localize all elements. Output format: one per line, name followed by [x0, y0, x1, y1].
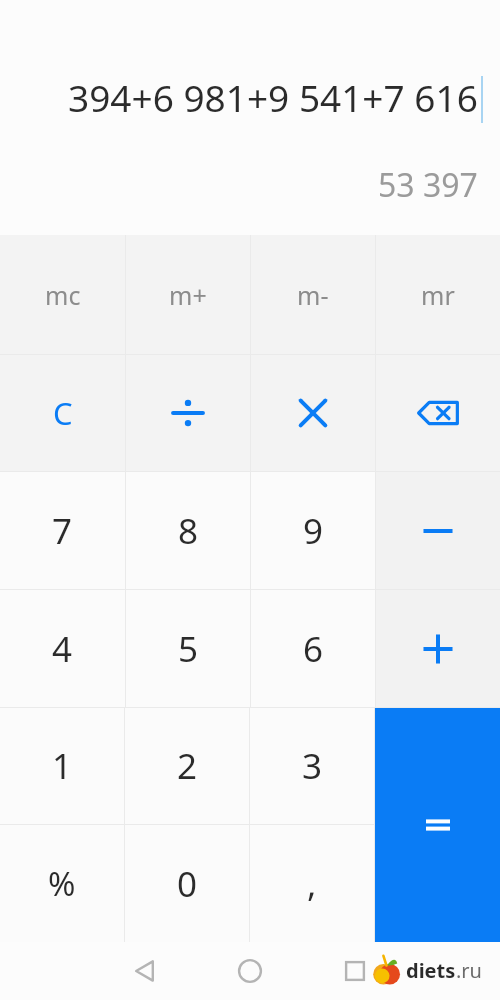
- staticText: 2: [177, 742, 198, 790]
- staticText: 53 397: [378, 163, 478, 207]
- button[interactable]: Multiply: [251, 355, 375, 471]
- staticText: m-: [297, 278, 329, 312]
- staticText: 3: [302, 742, 323, 790]
- button[interactable]: C: [0, 355, 125, 471]
- button[interactable]: 7: [0, 472, 125, 589]
- staticText: ,: [307, 860, 317, 908]
- staticText: 8: [178, 507, 199, 555]
- staticText: 1: [52, 742, 73, 790]
- button[interactable]: Back: [117, 942, 173, 1000]
- staticText: 5: [178, 625, 199, 673]
- staticText: 7: [52, 507, 73, 555]
- staticText: 6: [303, 625, 324, 673]
- staticText: %: [48, 861, 76, 906]
- button[interactable]: Divide: [126, 355, 250, 471]
- button[interactable]: 9: [251, 472, 375, 589]
- button[interactable]: ,: [250, 825, 374, 942]
- button[interactable]: 3: [250, 708, 374, 824]
- button[interactable]: Recents: [327, 942, 383, 1000]
- button[interactable]: mc: [0, 235, 125, 354]
- button[interactable]: 2: [125, 708, 249, 824]
- staticText: diets: [406, 957, 456, 984]
- button[interactable]: 1: [0, 708, 124, 824]
- button[interactable]: mr: [376, 235, 500, 354]
- button[interactable]: m+: [126, 235, 250, 354]
- button[interactable]: m-: [251, 235, 375, 354]
- staticText: 0: [177, 860, 198, 908]
- button[interactable]: 8: [126, 472, 250, 589]
- button[interactable]: 6: [251, 590, 375, 707]
- button[interactable]: Equals: [375, 708, 500, 942]
- button[interactable]: 4: [0, 590, 125, 707]
- button[interactable]: Minus: [376, 472, 500, 589]
- staticText: 9: [303, 507, 324, 555]
- staticText: C: [53, 392, 73, 434]
- staticText: mc: [45, 278, 81, 312]
- button[interactable]: Plus: [376, 590, 500, 707]
- button[interactable]: %: [0, 825, 124, 942]
- button[interactable]: Backspace: [376, 355, 500, 471]
- button[interactable]: 0: [125, 825, 249, 942]
- staticText: mr: [421, 278, 455, 312]
- staticText: m+: [169, 278, 207, 312]
- staticText: .ru: [456, 957, 482, 984]
- staticText: 4: [52, 625, 73, 673]
- staticText: 394+6 981+9 541+7 616: [68, 72, 478, 122]
- button[interactable]: 5: [126, 590, 250, 707]
- button[interactable]: Home: [222, 942, 278, 1000]
